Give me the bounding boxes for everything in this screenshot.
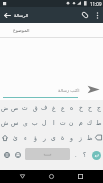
staticText: م [79, 119, 83, 126]
button[interactable]: ى [49, 130, 58, 145]
staticText: ؤ [34, 134, 37, 141]
button[interactable]: ئ [10, 130, 20, 145]
staticText: خ [79, 104, 83, 111]
staticText: ه [70, 104, 74, 111]
button[interactable]: ظ [85, 130, 94, 145]
staticText: س [11, 119, 19, 126]
staticText: ش [1, 119, 9, 126]
button[interactable]: ه [67, 100, 76, 115]
staticText: ر [43, 134, 46, 141]
button[interactable]: و [67, 130, 76, 145]
staticText: ؟ [83, 151, 87, 158]
staticText: ث [22, 104, 28, 111]
button[interactable]: غ [49, 100, 58, 115]
button[interactable]: ن [67, 115, 76, 130]
staticText: ى [51, 134, 56, 141]
button[interactable]: Space [25, 148, 70, 160]
button[interactable]: Enter [92, 151, 101, 160]
button[interactable]: Attach [78, 8, 92, 22]
staticText: ئ [13, 134, 18, 141]
button[interactable]: ق [30, 100, 40, 115]
staticText: ق [33, 104, 38, 111]
button[interactable]: ش [0, 115, 10, 130]
button[interactable]: ز [76, 130, 85, 145]
staticText: 11:09 [90, 1, 102, 7]
button[interactable]: ة [58, 130, 67, 145]
button[interactable]: . [70, 148, 82, 161]
button[interactable]: ص [10, 100, 20, 115]
button[interactable]: Recents [74, 170, 87, 183]
button[interactable]: ك [85, 115, 94, 130]
staticText: ض [1, 104, 9, 111]
staticText: ظ [87, 134, 93, 141]
staticText: ء [24, 134, 27, 141]
staticText: الموضوع [13, 28, 30, 33]
button[interactable]: Back [16, 170, 29, 183]
button[interactable]: ث [20, 100, 30, 115]
button[interactable]: ط [94, 115, 103, 130]
staticText: ج [97, 104, 101, 111]
button[interactable]: س [10, 115, 20, 130]
button[interactable]: Back [0, 8, 14, 22]
staticText: ا [53, 119, 55, 126]
staticText: ن [69, 119, 74, 126]
button[interactable]: ل [40, 115, 49, 130]
staticText: ي [23, 119, 28, 126]
staticText: ح [88, 104, 92, 111]
staticText: الرسالة [14, 13, 29, 18]
staticText: ف [41, 104, 48, 111]
button[interactable]: ج [94, 100, 103, 115]
button[interactable]: ح [85, 100, 94, 115]
button[interactable]: ا [49, 115, 58, 130]
button[interactable]: ي [20, 115, 30, 130]
staticText: ل [42, 119, 47, 126]
staticText: ب [32, 119, 38, 126]
staticText: ط [96, 119, 102, 126]
button[interactable]: م [76, 115, 85, 130]
button[interactable]: Send [86, 82, 101, 97]
button[interactable]: Home [45, 170, 58, 183]
button[interactable]: Emoji [11, 148, 24, 161]
staticText: و [70, 134, 73, 141]
staticText: ت [60, 119, 66, 126]
button[interactable]: ء [20, 130, 30, 145]
button[interactable]: ب [30, 115, 40, 130]
staticText: اكتب رسالة [58, 87, 80, 93]
staticText: ص [11, 104, 19, 111]
staticText: ك [87, 119, 92, 126]
button[interactable]: ض [0, 100, 10, 115]
button[interactable]: Switch language [0, 148, 13, 161]
button[interactable]: Backspace [94, 130, 103, 145]
staticText: ز [79, 134, 82, 141]
button[interactable]: ت [58, 115, 67, 130]
button[interactable]: ع [58, 100, 67, 115]
button[interactable]: Shift [0, 130, 10, 145]
button[interactable]: ؤ [30, 130, 40, 145]
button[interactable]: ف [40, 100, 49, 115]
button[interactable]: ؟ [79, 148, 91, 161]
staticText: ع [61, 104, 65, 111]
staticText: ة [61, 134, 65, 141]
button[interactable]: More options [92, 10, 103, 21]
staticText: غ [52, 104, 56, 111]
staticText: . [75, 151, 77, 159]
button[interactable]: ر [40, 130, 49, 145]
button[interactable]: خ [76, 100, 85, 115]
